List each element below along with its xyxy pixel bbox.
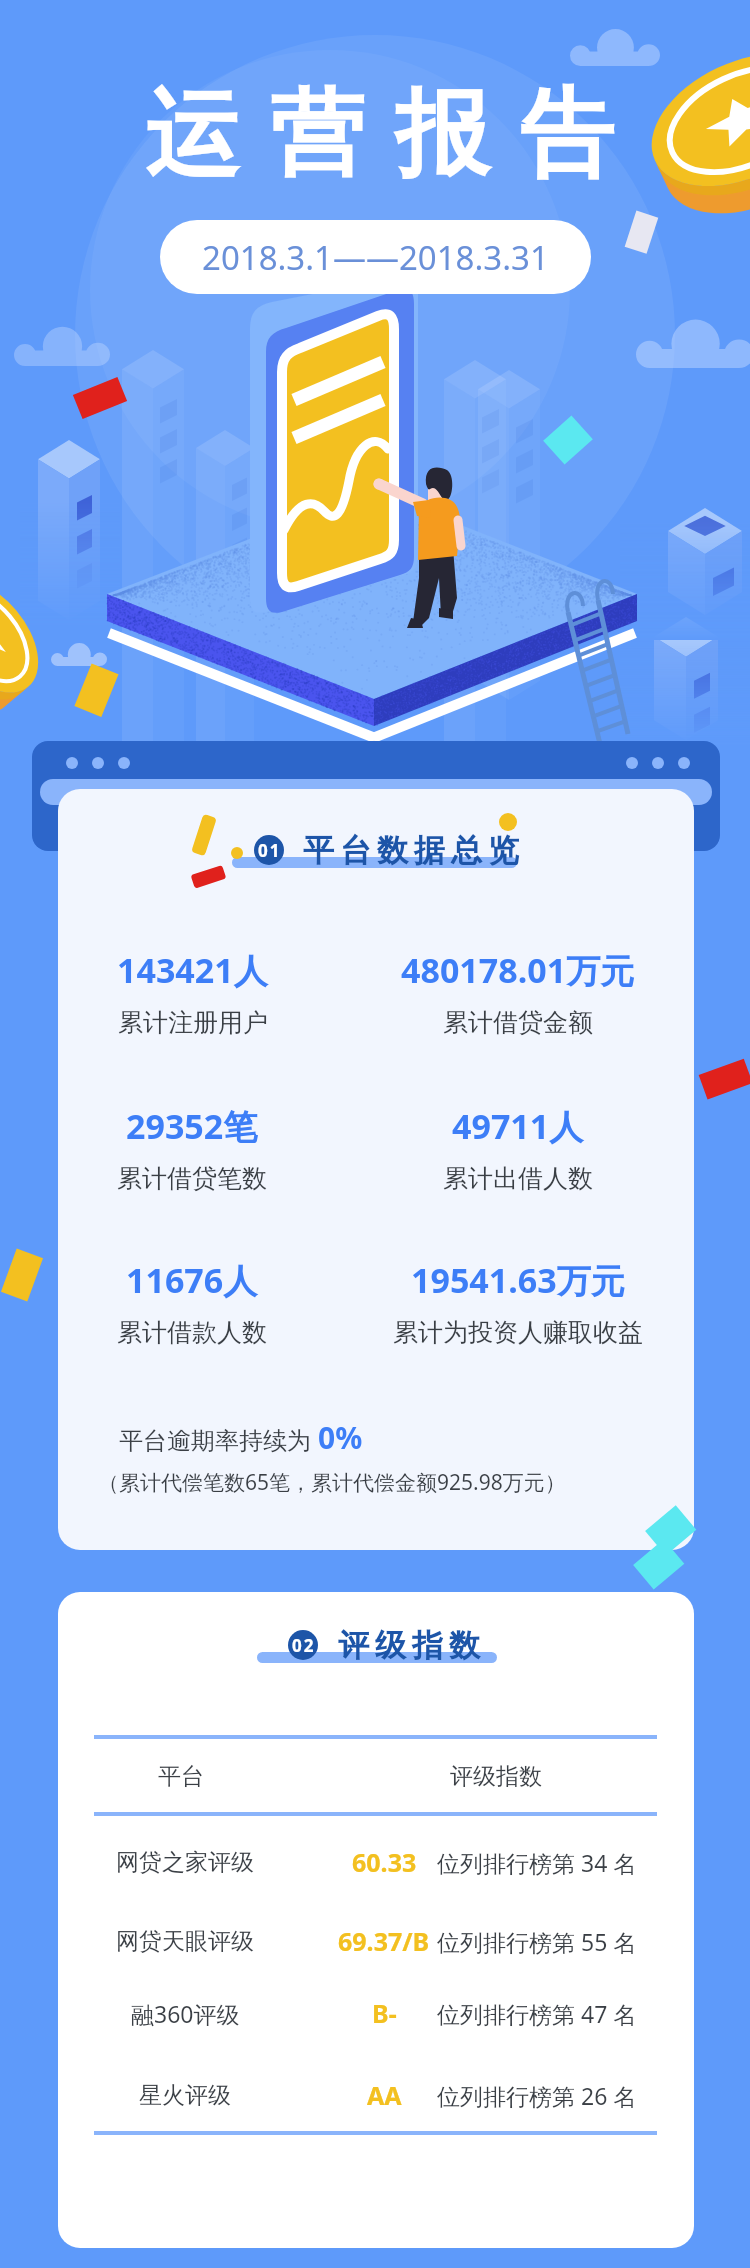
staticText: 评级指数	[335, 1626, 483, 1665]
staticText: 告	[520, 75, 612, 193]
staticText: 0%	[318, 1417, 363, 1458]
staticText: 累计注册用户	[118, 1007, 268, 1038]
staticText: 位列排行榜第 55 名	[437, 1926, 637, 1957]
staticText: 累计为投资人赚取收益	[393, 1317, 643, 1348]
staticText: 480178.01万元	[401, 947, 635, 993]
staticText: B-	[372, 1996, 397, 2030]
staticText: 报	[395, 75, 487, 193]
staticText: 星火评级	[139, 2081, 231, 2110]
staticText: （累计代偿笔数65笔，累计代偿金额925.98万元）	[98, 1468, 566, 1497]
staticText: 融360评级	[131, 1998, 240, 2029]
staticText: 位列排行榜第 47 名	[437, 1998, 637, 2029]
staticText: 60.33	[352, 1845, 417, 1879]
staticText: 19541.63万元	[411, 1257, 625, 1303]
staticText: 平台	[158, 1762, 204, 1791]
staticText: 02	[292, 1634, 316, 1657]
staticText: 位列排行榜第 26 名	[437, 2080, 637, 2111]
staticText: AA	[367, 2078, 402, 2112]
staticText: 143421人	[117, 947, 268, 993]
staticText: 11676人	[126, 1257, 258, 1303]
staticText: 位列排行榜第 34 名	[437, 1847, 637, 1878]
staticText: 01	[258, 839, 282, 862]
button[interactable]: 2018.3.1——2018.3.31	[160, 220, 591, 294]
staticText: 累计借贷金额	[443, 1007, 593, 1038]
staticText: 69.37/B	[338, 1924, 430, 1958]
staticText: 累计借款人数	[117, 1317, 267, 1348]
staticText: 网贷天眼评级	[116, 1927, 254, 1956]
staticText: 2018.3.1——2018.3.31	[202, 235, 549, 280]
staticText: 累计借贷笔数	[117, 1163, 267, 1194]
staticText: 平台逾期率持续为	[119, 1423, 318, 1456]
staticText: 运	[145, 75, 237, 193]
staticText: 平台数据总览	[300, 831, 522, 870]
staticText: 29352笔	[126, 1103, 258, 1149]
staticText: 网贷之家评级	[116, 1848, 254, 1877]
staticText: 营	[270, 75, 362, 193]
staticText: 累计出借人数	[443, 1163, 593, 1194]
staticText: 评级指数	[450, 1762, 542, 1791]
staticText: 49711人	[452, 1103, 584, 1149]
